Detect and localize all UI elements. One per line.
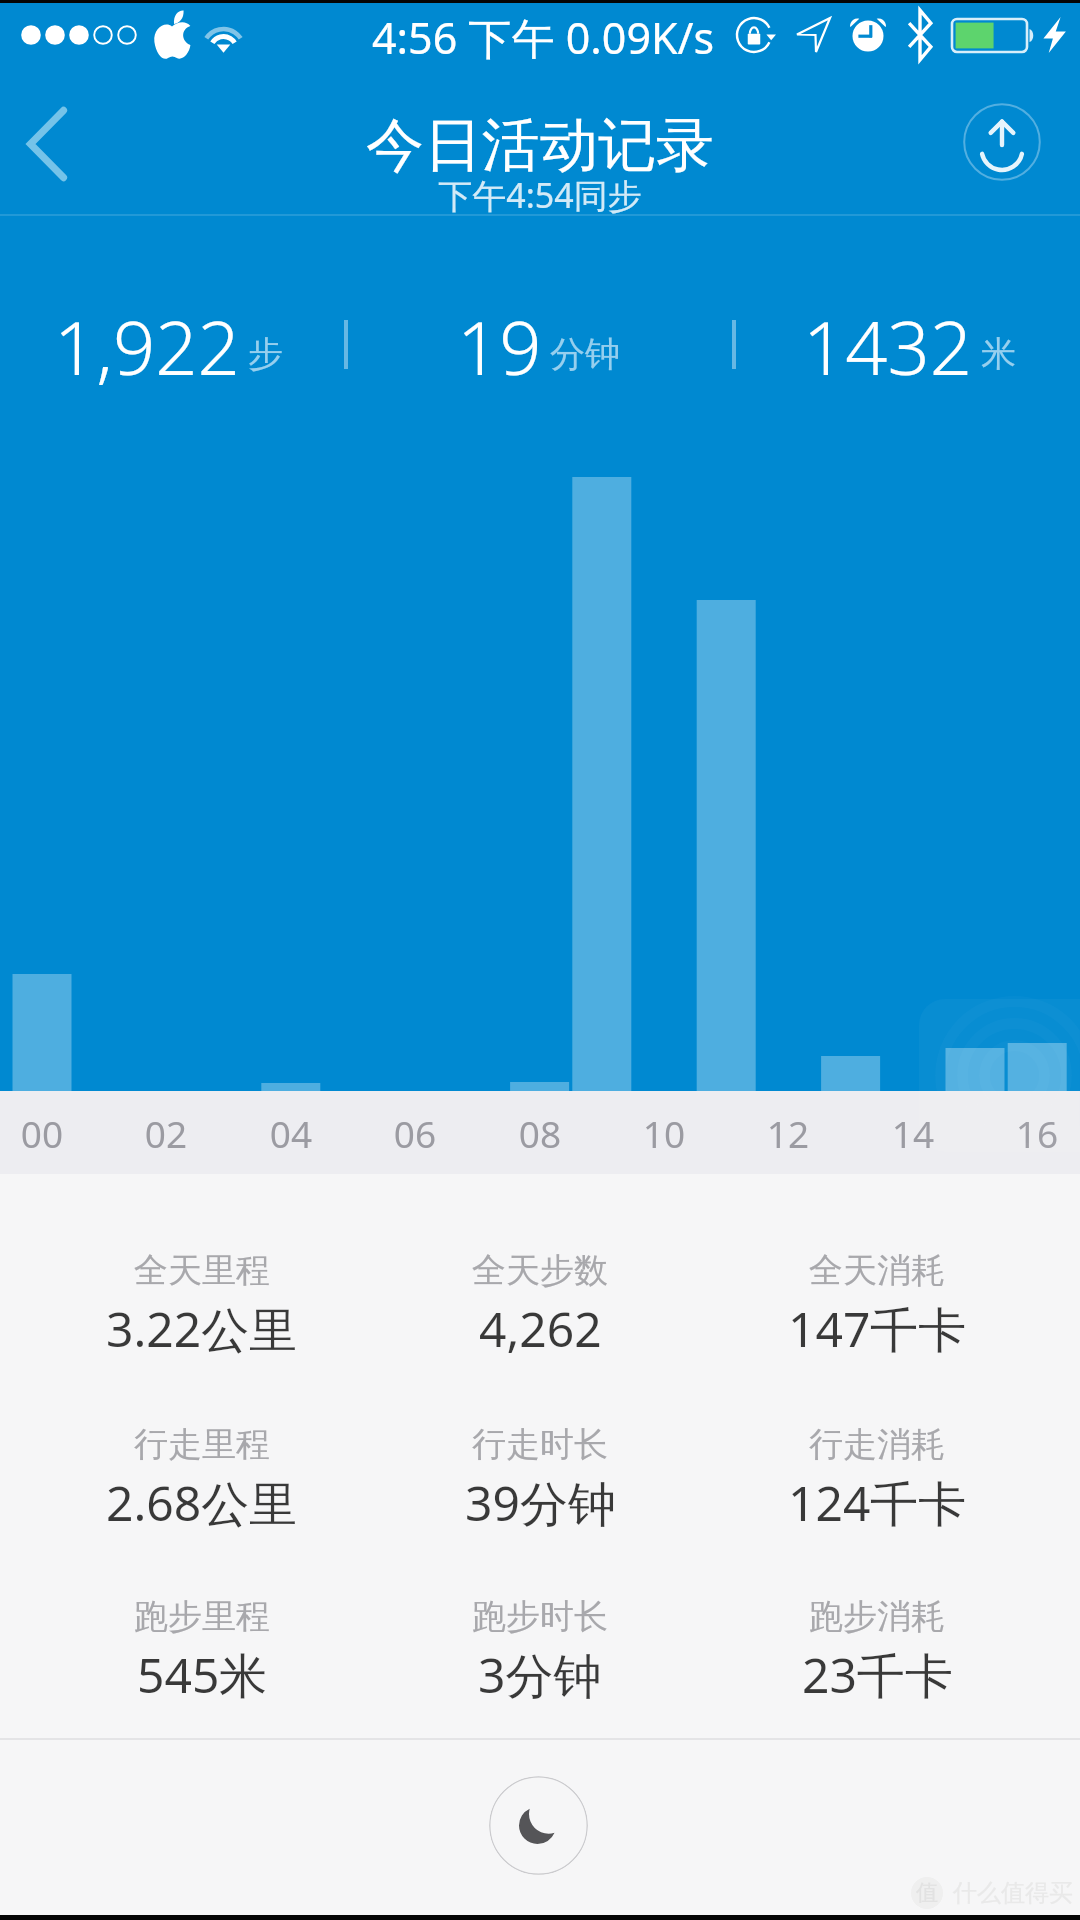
staticText: 12	[728, 1108, 848, 1158]
button[interactable]: 跑步消耗	[707, 1595, 1047, 1708]
staticText: 1,922	[54, 296, 240, 388]
button[interactable]: 19	[358, 296, 718, 388]
staticText: 米	[981, 332, 1016, 376]
staticText: 全天步数	[472, 1249, 608, 1292]
staticText: 行走消耗	[809, 1423, 945, 1466]
button[interactable]: 全天步数	[370, 1249, 710, 1361]
staticText: 3分钟	[478, 1642, 602, 1708]
staticText: 跑步时长	[472, 1595, 608, 1638]
staticText: 4:56 下午 0.09K/s	[372, 8, 715, 67]
button[interactable]: Sleep	[489, 1776, 588, 1875]
button[interactable]: 全天消耗	[707, 1249, 1047, 1362]
button[interactable]: Back	[6, 96, 106, 192]
staticText: 545米	[137, 1642, 268, 1708]
staticText: 39分钟	[465, 1470, 616, 1536]
staticText: 行走时长	[472, 1423, 608, 1466]
staticText: 全天里程	[134, 1249, 270, 1292]
staticText: 04	[231, 1108, 351, 1158]
staticText: 124千卡	[788, 1470, 967, 1536]
button[interactable]: 行走里程	[32, 1423, 372, 1536]
button[interactable]: 跑步里程	[32, 1595, 372, 1708]
staticText: 跑步里程	[134, 1595, 270, 1638]
button[interactable]: Share	[963, 103, 1041, 181]
staticText: 下午4:54同步	[0, 172, 1080, 218]
staticText: 今日活动记录	[0, 109, 1080, 182]
button[interactable]: 1432	[729, 296, 1080, 388]
staticText: 全天消耗	[809, 1249, 945, 1292]
staticText: 02	[106, 1108, 226, 1158]
button[interactable]: 行走消耗	[707, 1423, 1047, 1536]
staticText: 00	[0, 1108, 102, 1158]
staticText: 值	[916, 1879, 938, 1907]
staticText: 08	[480, 1108, 600, 1158]
button[interactable]: 1,922	[0, 296, 348, 388]
staticText: 3.22公里	[106, 1296, 298, 1362]
staticText: 行走里程	[134, 1423, 270, 1466]
button[interactable]: 跑步时长	[370, 1595, 710, 1708]
staticText: 19	[457, 296, 542, 388]
staticText: 分钟	[550, 332, 620, 376]
staticText: 14	[853, 1108, 973, 1158]
staticText: 10	[604, 1108, 724, 1158]
button[interactable]: 行走时长	[370, 1423, 710, 1536]
staticText: 步	[248, 332, 283, 376]
staticText: 2.68公里	[106, 1470, 298, 1536]
staticText: 1432	[803, 296, 973, 388]
staticText: 23千卡	[802, 1642, 953, 1708]
button[interactable]: 全天里程	[32, 1249, 372, 1362]
staticText: 147千卡	[788, 1296, 967, 1362]
staticText: 4,262	[479, 1296, 602, 1361]
staticText: 16	[977, 1108, 1080, 1158]
staticText: 什么值得买	[953, 1878, 1073, 1908]
staticText: 06	[355, 1108, 475, 1158]
staticText: 跑步消耗	[809, 1595, 945, 1638]
